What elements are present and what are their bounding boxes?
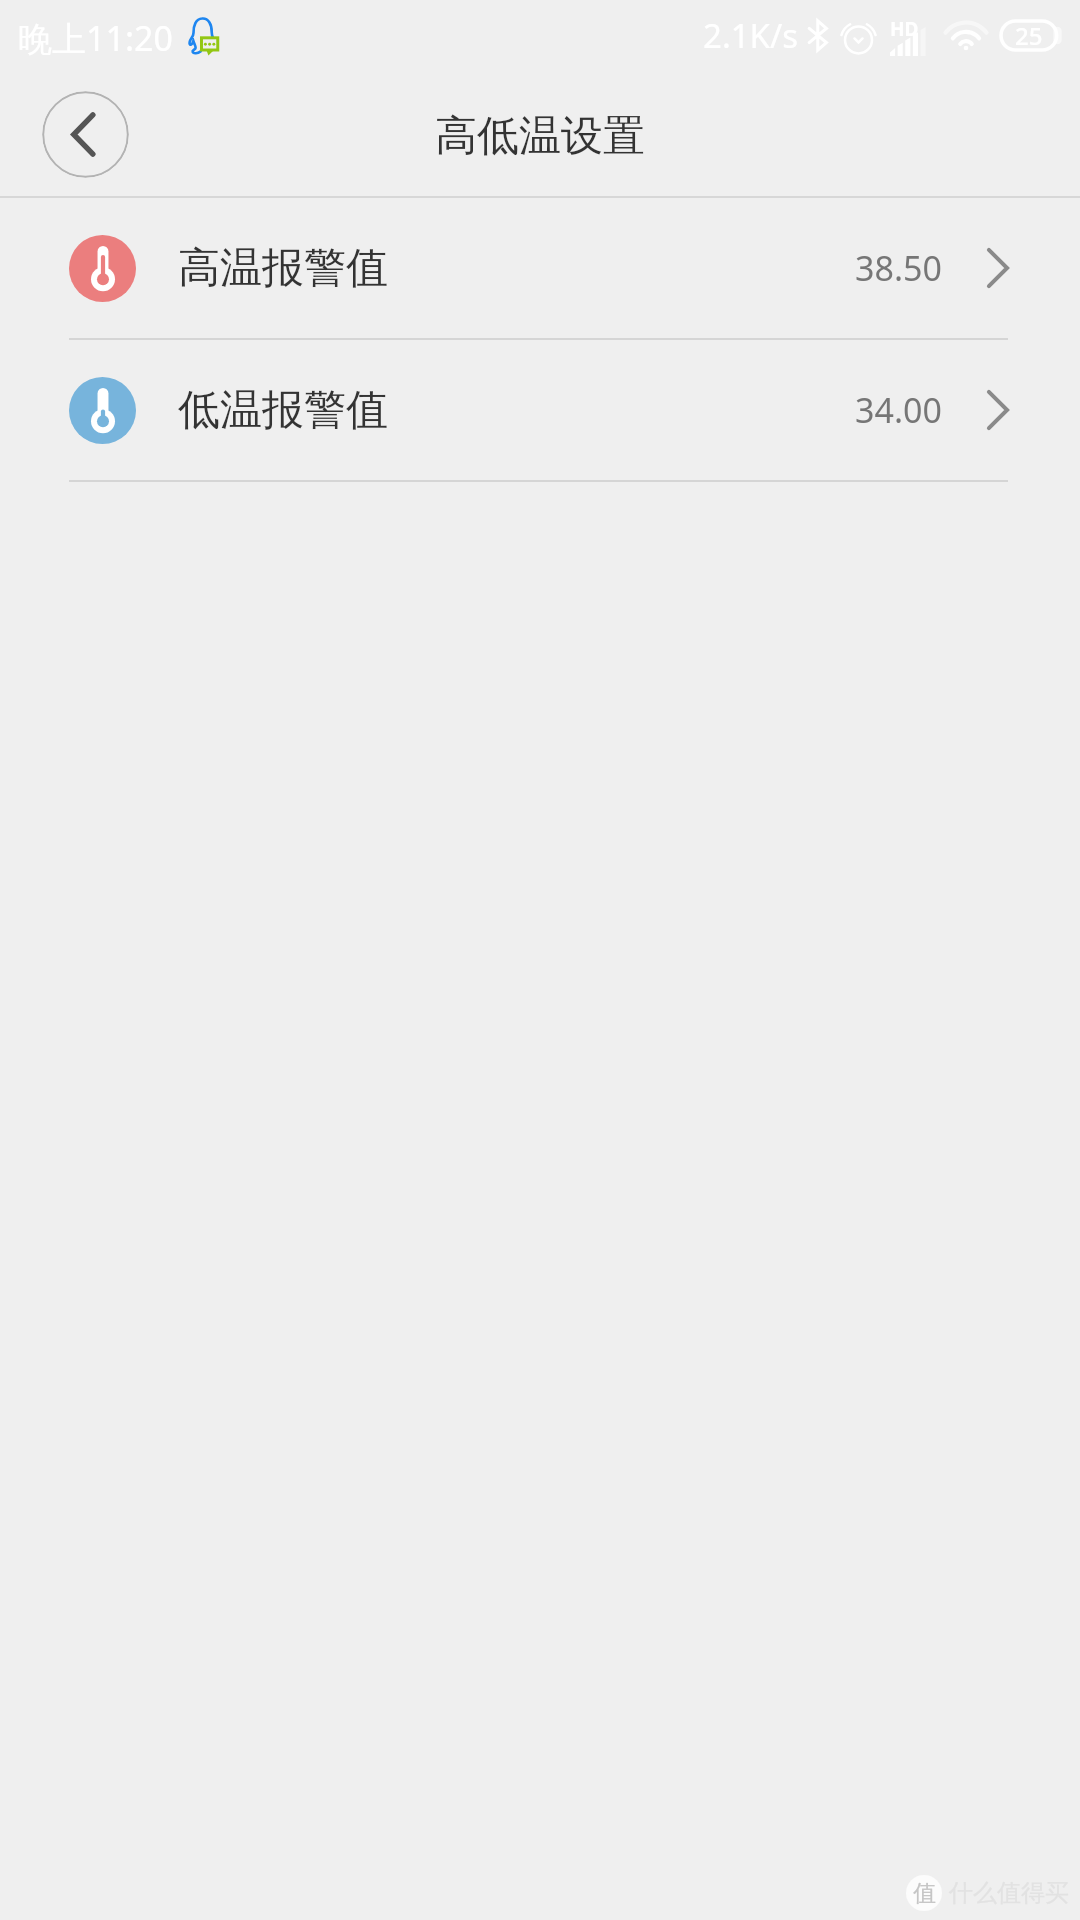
staticText: 25 — [1015, 19, 1043, 52]
staticText: 38.50 — [855, 245, 942, 291]
staticText: 高低温设置 — [435, 110, 645, 163]
staticText: HD — [890, 16, 919, 42]
button[interactable]: Back — [42, 91, 129, 178]
staticText: 值 — [913, 1879, 936, 1908]
staticText: 晚上11:20 — [18, 15, 173, 61]
staticText: 2.1K/s — [703, 13, 799, 58]
staticText: 34.00 — [855, 387, 942, 433]
staticText: 低温报警值 — [178, 384, 388, 437]
button[interactable]: 高温报警值 — [0, 198, 1080, 338]
staticText: 高温报警值 — [178, 242, 388, 295]
staticText: 什么值得买 — [949, 1878, 1069, 1908]
button[interactable]: 低温报警值 — [0, 340, 1080, 480]
